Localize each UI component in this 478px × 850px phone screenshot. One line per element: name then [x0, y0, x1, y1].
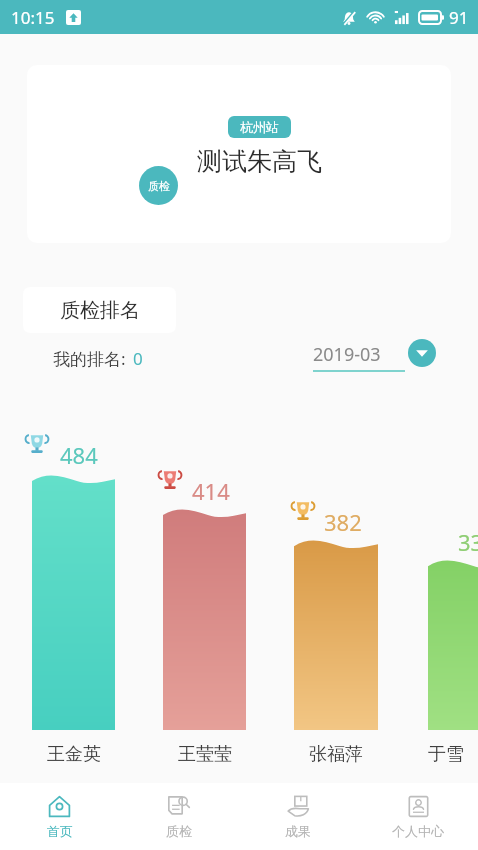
staticText: 张福萍	[309, 743, 363, 766]
other: Select month	[408, 339, 436, 367]
staticText: 382	[324, 507, 362, 537]
button[interactable]: 质检	[27, 65, 451, 243]
staticText: 10:15	[11, 6, 55, 29]
staticText: 质检	[148, 179, 170, 193]
staticText: 王金英	[47, 743, 101, 766]
button[interactable]: 个人中心	[358, 783, 478, 850]
staticText: 个人中心	[392, 823, 444, 839]
button[interactable]: 质检	[119, 783, 238, 850]
button[interactable]: 质检排名	[23, 287, 176, 333]
staticText: 测试朱高飞	[197, 146, 322, 177]
staticText: 33	[458, 527, 478, 557]
staticText: 91	[449, 6, 469, 29]
staticText: 2019-03	[313, 342, 381, 367]
staticText: 质检	[166, 823, 192, 839]
staticText: 我的排名:	[53, 347, 126, 370]
staticText: 414	[192, 476, 230, 506]
button[interactable]: 成果	[238, 783, 358, 850]
button[interactable]: 2019-03	[313, 342, 436, 372]
staticText: 质检排名	[60, 298, 140, 323]
staticText: 王莹莹	[178, 743, 232, 766]
staticText: 0	[133, 347, 143, 370]
staticText: 首页	[47, 823, 73, 839]
staticText: 484	[60, 440, 98, 470]
staticText: 成果	[285, 823, 311, 839]
staticText: 于雪	[428, 743, 464, 766]
staticText: 杭州站	[240, 119, 279, 135]
button[interactable]: 首页	[0, 783, 119, 850]
